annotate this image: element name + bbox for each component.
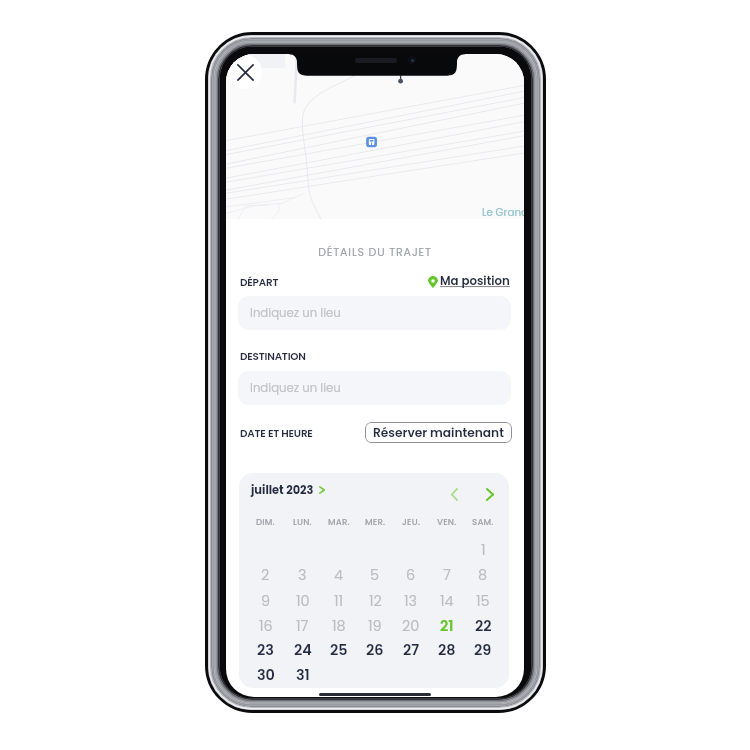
- button[interactable]: 29: [465, 637, 501, 662]
- staticText: 25: [330, 640, 348, 660]
- button[interactable]: 18: [321, 613, 357, 638]
- staticText: 19: [368, 616, 382, 636]
- button[interactable]: 10: [284, 588, 321, 613]
- staticText: 29: [474, 640, 492, 660]
- staticText: JEU.: [402, 516, 421, 528]
- staticText: juillet 2023: [251, 482, 314, 498]
- staticText: 28: [438, 640, 456, 660]
- staticText: Réserver maintenant: [373, 424, 504, 441]
- staticText: 3: [298, 565, 307, 585]
- button[interactable]: Ma position: [426, 271, 512, 292]
- button[interactable]: 15: [465, 588, 501, 613]
- button[interactable]: 26: [357, 637, 393, 662]
- staticText: DATE ET HEURE: [240, 426, 313, 441]
- staticText: DIM.: [256, 516, 275, 528]
- button[interactable]: 6: [393, 562, 429, 587]
- staticText: 1: [481, 540, 486, 560]
- button[interactable]: 11: [321, 588, 357, 613]
- staticText: 30: [257, 665, 275, 685]
- staticText: 12: [369, 591, 382, 611]
- staticText: DESTINATION: [240, 349, 306, 364]
- button[interactable]: 4: [321, 562, 357, 587]
- staticText: MAR.: [328, 516, 350, 528]
- button[interactable]: 7: [429, 562, 465, 587]
- staticText: 23: [257, 640, 274, 660]
- button[interactable]: 12: [357, 588, 393, 613]
- staticText: DÉPART: [240, 275, 279, 289]
- staticText: 15: [476, 591, 490, 611]
- staticText: SAM.: [472, 516, 494, 528]
- button[interactable]: 16: [247, 613, 284, 638]
- staticText: 11: [334, 591, 344, 611]
- staticText: 22: [475, 616, 492, 636]
- button[interactable]: 3: [284, 562, 321, 587]
- staticText: 27: [403, 640, 420, 660]
- staticText: 20: [402, 616, 420, 636]
- button[interactable]: 13: [393, 588, 429, 613]
- staticText: DÉTAILS DU TRAJET: [226, 244, 524, 259]
- button[interactable]: 19: [357, 613, 393, 638]
- staticText: LUN.: [293, 516, 312, 528]
- button[interactable]: Indiquez un lieu: [238, 371, 511, 405]
- button[interactable]: 28: [429, 637, 465, 662]
- staticText: 18: [332, 616, 346, 636]
- button[interactable]: 23: [247, 637, 284, 662]
- staticText: 7: [443, 565, 451, 585]
- staticText: 9: [261, 591, 271, 611]
- staticText: 13: [404, 591, 418, 611]
- staticText: 5: [370, 565, 380, 585]
- button[interactable]: Mois suivant: [479, 483, 501, 505]
- button[interactable]: 5: [357, 562, 393, 587]
- button[interactable]: Réserver maintenant: [365, 422, 512, 443]
- button[interactable]: 9: [247, 588, 284, 613]
- staticText: Ma position: [440, 273, 510, 290]
- staticText: VEN.: [437, 516, 457, 528]
- button[interactable]: 8: [465, 562, 501, 587]
- button[interactable]: 1: [465, 537, 501, 562]
- staticText: Le Grandes: [482, 205, 524, 219]
- button[interactable]: 14: [429, 588, 465, 613]
- staticText: 8: [478, 565, 488, 585]
- button[interactable]: juillet 2023: [251, 482, 325, 498]
- button[interactable]: 20: [393, 613, 429, 638]
- button[interactable]: Fermer: [228, 55, 262, 89]
- button[interactable]: 27: [393, 637, 429, 662]
- staticText: Indiquez un lieu: [250, 380, 341, 396]
- button[interactable]: 24: [284, 637, 321, 662]
- button[interactable]: Mois précédent: [443, 483, 465, 505]
- staticText: MER.: [365, 516, 386, 528]
- button[interactable]: 17: [284, 613, 321, 638]
- button[interactable]: 2: [247, 562, 284, 587]
- button[interactable]: 22: [465, 613, 501, 638]
- staticText: 10: [296, 591, 310, 611]
- staticText: 24: [294, 640, 312, 660]
- staticText: 26: [366, 640, 384, 660]
- button[interactable]: 21: [429, 613, 465, 638]
- staticText: Indiquez un lieu: [250, 305, 341, 321]
- button[interactable]: Indiquez un lieu: [238, 296, 511, 330]
- staticText: 14: [440, 591, 454, 611]
- button[interactable]: 25: [321, 637, 357, 662]
- button[interactable]: 30: [247, 662, 284, 687]
- staticText: 4: [334, 565, 344, 585]
- staticText: 21: [440, 616, 454, 636]
- staticText: 31: [296, 665, 310, 685]
- staticText: 2: [261, 565, 270, 585]
- staticText: 17: [296, 616, 309, 636]
- button[interactable]: 31: [284, 662, 321, 687]
- staticText: 16: [259, 616, 273, 636]
- staticText: 6: [406, 565, 416, 585]
